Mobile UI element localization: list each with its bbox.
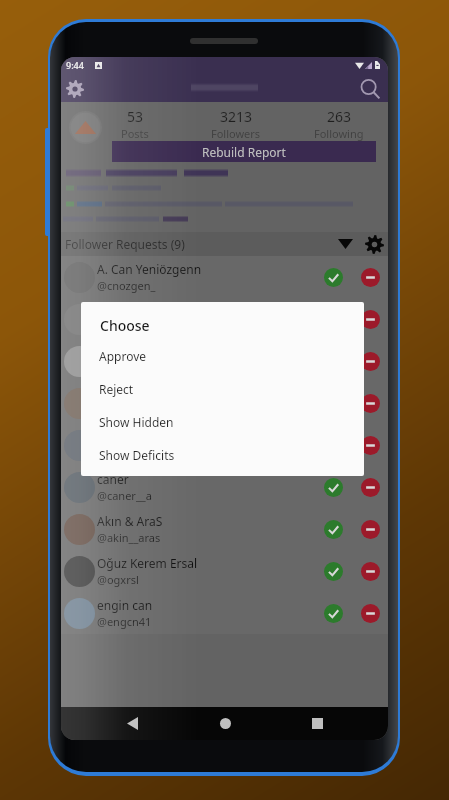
staticText: Follower Requests (9) xyxy=(65,236,185,252)
button[interactable]: Burak xyxy=(61,298,388,340)
staticText: Oğuz Kerem Ersal xyxy=(97,555,198,571)
staticText: Ofis Mobilya xyxy=(97,345,168,361)
button[interactable]: Home xyxy=(203,707,247,740)
staticText: @caner__a xyxy=(97,488,152,503)
staticText: Reject xyxy=(99,381,134,397)
staticText: Posts xyxy=(121,126,149,141)
button[interactable]: Reject xyxy=(352,427,388,463)
button[interactable]: tatil xyxy=(61,424,388,466)
button[interactable]: Follower Requests (9) xyxy=(61,232,388,256)
staticText: Following xyxy=(314,126,364,141)
staticText: Akın & AraS xyxy=(97,513,163,529)
staticText: engin can xyxy=(97,597,153,613)
button[interactable]: engin can xyxy=(61,592,388,634)
staticText: @akin__aras xyxy=(97,530,161,545)
button[interactable]: A. Can Yeniözgenn xyxy=(61,256,388,298)
button[interactable]: Ofis Mobilya xyxy=(61,340,388,382)
button[interactable]: Reject xyxy=(352,343,388,379)
button[interactable]: Reject xyxy=(352,385,388,421)
button[interactable]: Settings xyxy=(62,76,88,102)
staticText: @tatil_ xyxy=(97,446,132,461)
button[interactable]: Approve xyxy=(81,339,364,372)
button[interactable]: Reject xyxy=(81,372,364,405)
button[interactable]: Recent apps xyxy=(295,707,339,740)
staticText: A. Can Yeniözgenn xyxy=(97,261,202,277)
staticText: Approve xyxy=(99,348,147,364)
button[interactable]: Back xyxy=(110,707,154,740)
staticText: 3213 xyxy=(220,107,253,126)
staticText: Show Deficits xyxy=(99,447,175,463)
button[interactable]: Show Deficits xyxy=(81,438,364,471)
staticText: Show Hidden xyxy=(99,414,174,430)
staticText: Choose xyxy=(100,316,150,335)
staticText: @burak_ xyxy=(97,320,142,335)
staticText: @ofismobilya xyxy=(97,362,167,377)
staticText: aile xyxy=(97,387,117,403)
button[interactable]: Filter settings xyxy=(360,232,388,256)
button[interactable]: caner xyxy=(61,466,388,508)
staticText: @cnozgen_ xyxy=(97,278,156,293)
button[interactable]: Rebuild Report xyxy=(112,141,376,162)
button[interactable]: Approve xyxy=(314,594,352,632)
button[interactable]: Approve xyxy=(314,258,352,296)
staticText: 53 xyxy=(127,107,144,126)
staticText: caner xyxy=(97,471,129,487)
button[interactable]: Akın & AraS xyxy=(61,508,388,550)
button[interactable]: Show Hidden xyxy=(81,405,364,438)
staticText: Followers xyxy=(211,126,261,141)
staticText: @engcn41 xyxy=(97,614,152,629)
button[interactable]: Reject xyxy=(352,469,388,505)
staticText: @ogxrsl xyxy=(97,572,139,587)
button[interactable]: Approve xyxy=(314,552,352,590)
button[interactable]: Reject xyxy=(352,259,388,295)
staticText: 9:44 xyxy=(66,59,84,71)
button[interactable]: Approve xyxy=(314,300,352,338)
button[interactable]: aile xyxy=(61,382,388,424)
button[interactable]: Reject xyxy=(352,511,388,547)
button[interactable]: Approve xyxy=(314,510,352,548)
button[interactable]: Search xyxy=(355,74,384,103)
staticText: Rebuild Report xyxy=(202,144,286,160)
button[interactable]: Reject xyxy=(352,553,388,589)
staticText: @aile_ xyxy=(97,404,130,419)
button[interactable]: Expand list xyxy=(330,232,360,256)
button[interactable]: Approve xyxy=(314,468,352,506)
button[interactable]: Oğuz Kerem Ersal xyxy=(61,550,388,592)
button[interactable]: Reject xyxy=(352,595,388,631)
staticText: 263 xyxy=(327,107,352,126)
button[interactable]: Reject xyxy=(352,301,388,337)
